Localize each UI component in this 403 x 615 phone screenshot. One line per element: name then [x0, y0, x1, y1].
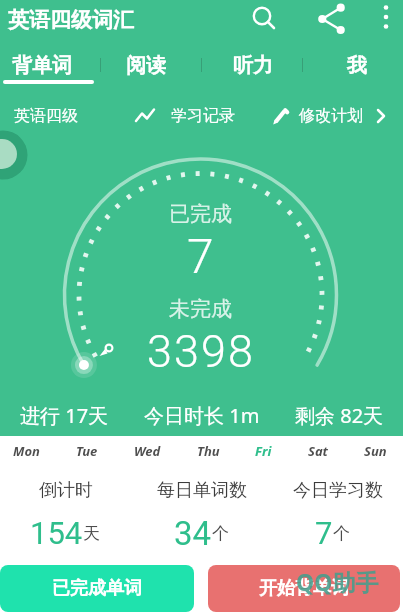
staticText: 3398	[147, 325, 255, 378]
staticText: 开始背单词	[259, 577, 349, 600]
staticText: Thu	[197, 442, 220, 460]
button[interactable]	[201, 44, 302, 88]
staticText: Sun	[364, 442, 387, 460]
button[interactable]: 已完成单词	[0, 565, 194, 612]
button[interactable]	[312, 0, 352, 38]
staticText: 进行 17天	[20, 402, 109, 426]
staticText: 听力	[233, 53, 273, 78]
staticText: 今日学习数	[293, 479, 383, 502]
staticText: QQ助手	[296, 566, 379, 596]
staticText: Fri	[255, 442, 272, 460]
staticText: 天	[83, 523, 100, 544]
button[interactable]: 学习记录	[130, 100, 242, 132]
button[interactable]: 开始背单词	[208, 565, 400, 612]
button[interactable]: Tue	[76, 442, 98, 460]
staticText: Wed	[134, 442, 161, 460]
staticText: 154	[30, 515, 83, 551]
button[interactable]	[302, 44, 403, 88]
staticText: 背单词	[12, 53, 72, 78]
button[interactable]	[242, 0, 282, 38]
button[interactable]: Sat	[308, 442, 328, 460]
button[interactable]: Wed	[134, 442, 161, 460]
button[interactable]: Mon	[13, 442, 40, 460]
staticText: Sat	[308, 442, 328, 460]
staticText: 英语四级	[14, 106, 78, 126]
button[interactable]: 修改计划	[268, 100, 368, 132]
staticText: 倒计时	[39, 479, 93, 502]
staticText: 7	[315, 515, 333, 551]
button[interactable]: Thu	[197, 442, 220, 460]
staticText: 7	[187, 228, 214, 284]
button[interactable]: Sun	[364, 442, 387, 460]
staticText: 今日时长 1m	[144, 402, 260, 426]
staticText: 个	[212, 523, 229, 544]
staticText: 已完成	[169, 201, 232, 227]
staticText: Mon	[13, 442, 40, 460]
staticText: Tue	[76, 442, 98, 460]
staticText: 个	[333, 523, 350, 544]
staticText: 每日单词数	[157, 479, 247, 502]
staticText: 英语四级词汇	[8, 7, 134, 33]
button[interactable]	[0, 44, 100, 88]
staticText: 34	[174, 514, 212, 553]
button[interactable]	[372, 0, 403, 38]
staticText: 阅读	[126, 53, 166, 78]
staticText: 剩余 82天	[295, 402, 384, 426]
staticText: 已完成单词	[52, 577, 142, 600]
button[interactable]	[100, 44, 201, 88]
button[interactable]: Fri	[255, 442, 272, 460]
staticText: 修改计划	[299, 106, 363, 126]
staticText: 我	[347, 53, 367, 78]
staticText: 学习记录	[171, 106, 235, 126]
staticText: 未完成	[169, 296, 232, 322]
button[interactable]: 英语四级	[14, 104, 94, 128]
